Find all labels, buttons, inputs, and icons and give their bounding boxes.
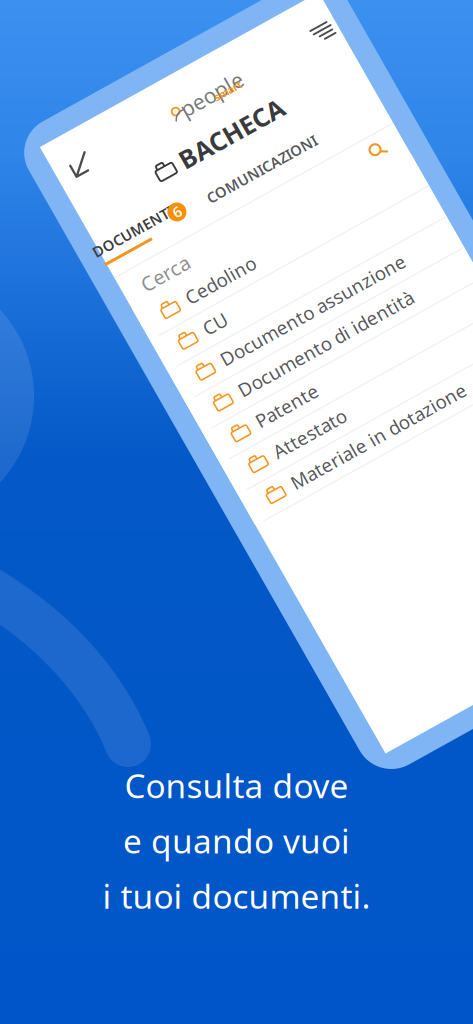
staticText: COMUNICAZIONI: [152, 277, 276, 297]
staticText: Consulta dove: [124, 763, 348, 807]
staticText: Cedolino: [84, 352, 162, 376]
staticText: Documento assunzione: [84, 423, 293, 447]
button[interactable]: Attestato: [32, 524, 351, 559]
button[interactable]: DOCUMENTI: [21, 270, 121, 304]
button[interactable]: Materiale in dotazione: [32, 559, 351, 595]
staticText: people: [173, 183, 242, 211]
button[interactable]: CU: [32, 382, 351, 417]
staticText: smart: [208, 195, 239, 209]
button[interactable]: COMUNICAZIONI: [144, 270, 284, 304]
staticText: DOCUMENTI: [26, 269, 116, 289]
button[interactable]: Indietro: [36, 173, 80, 217]
staticText: e quando vuoi: [123, 818, 350, 863]
button[interactable]: Patente: [32, 488, 351, 524]
staticText: Materiale in dotazione: [84, 565, 282, 589]
button[interactable]: Documento di identità: [32, 453, 351, 488]
staticText: BACHECA: [147, 224, 264, 258]
button[interactable]: Documento assunzione: [32, 417, 351, 453]
staticText: i tuoi documenti.: [102, 874, 370, 918]
staticText: Documento di identità: [84, 458, 282, 483]
staticText: 6: [115, 273, 123, 293]
button[interactable]: Cedolino: [32, 346, 351, 382]
button[interactable]: Cerca: [306, 310, 342, 344]
